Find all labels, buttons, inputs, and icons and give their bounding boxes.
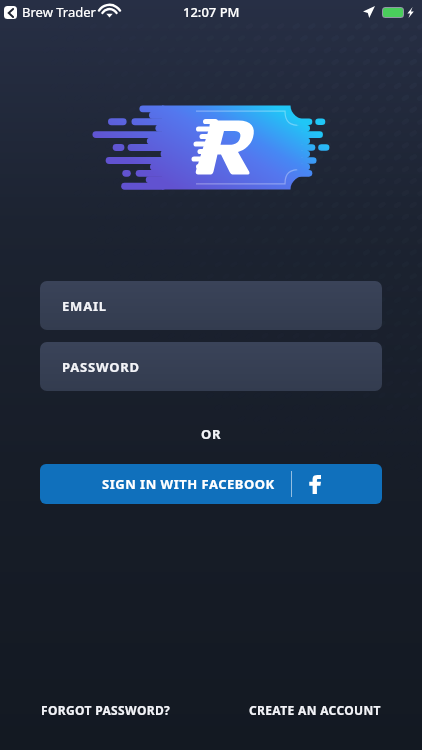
staticText: Brew Trader (22, 3, 96, 21)
staticText: OR (201, 425, 222, 443)
staticText: EMAIL (62, 297, 107, 315)
button[interactable]: PASSWORD (40, 342, 382, 391)
staticText: CREATE AN ACCOUNT (249, 702, 381, 718)
button[interactable]: FORGOT PASSWORD? (41, 702, 171, 718)
staticText: SIGN IN WITH FACEBOOK (102, 475, 275, 493)
staticText: PASSWORD (62, 358, 140, 376)
button[interactable]: SIGN IN WITH FACEBOOK (40, 464, 382, 504)
button[interactable]: Back to Brew Trader (4, 6, 17, 19)
button[interactable]: CREATE AN ACCOUNT (249, 702, 381, 718)
staticText: FORGOT PASSWORD? (41, 702, 171, 718)
button[interactable]: EMAIL (40, 281, 382, 330)
staticText: 12:07 PM (183, 3, 240, 21)
